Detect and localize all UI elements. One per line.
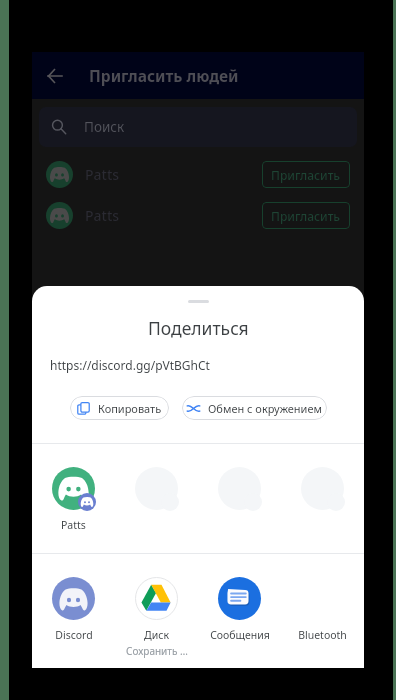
staticText: Копировать [98,401,162,416]
button[interactable] [198,467,281,511]
staticText: Диск [144,628,169,642]
staticText: Поделиться [148,316,249,340]
button[interactable]: Диск [115,577,198,658]
staticText: Поиск [84,118,125,136]
staticText: https://discord.gg/pVtBGhCt [50,357,210,373]
staticText: Сохранить … [126,644,188,658]
button[interactable]: Back [36,57,74,95]
staticText: Bluetooth [298,628,347,642]
button[interactable]: Обмен с окружением [182,396,327,420]
button[interactable]: Discord [32,577,115,642]
button[interactable] [115,467,198,511]
staticText: Сообщения [210,628,270,642]
button[interactable]: Поиск [39,107,357,147]
staticText: Пригласить [271,167,341,183]
button[interactable]: Пригласить [262,161,350,188]
button[interactable]: Patts [32,154,364,195]
button[interactable]: Patts [32,467,115,532]
staticText: Пригласить людей [89,65,239,86]
staticText: Обмен с окружением [208,401,322,416]
staticText: Patts [85,165,120,184]
button[interactable]: Копировать [70,396,169,420]
button[interactable]: Сообщения [198,577,281,642]
staticText: Patts [61,518,86,532]
staticText: Patts [85,206,120,225]
button[interactable] [281,467,364,511]
staticText: Пригласить [271,208,341,224]
staticText: Discord [55,628,93,642]
button[interactable]: Patts [32,195,364,236]
button[interactable]: Bluetooth [281,577,364,642]
button[interactable]: Пригласить [262,202,350,229]
